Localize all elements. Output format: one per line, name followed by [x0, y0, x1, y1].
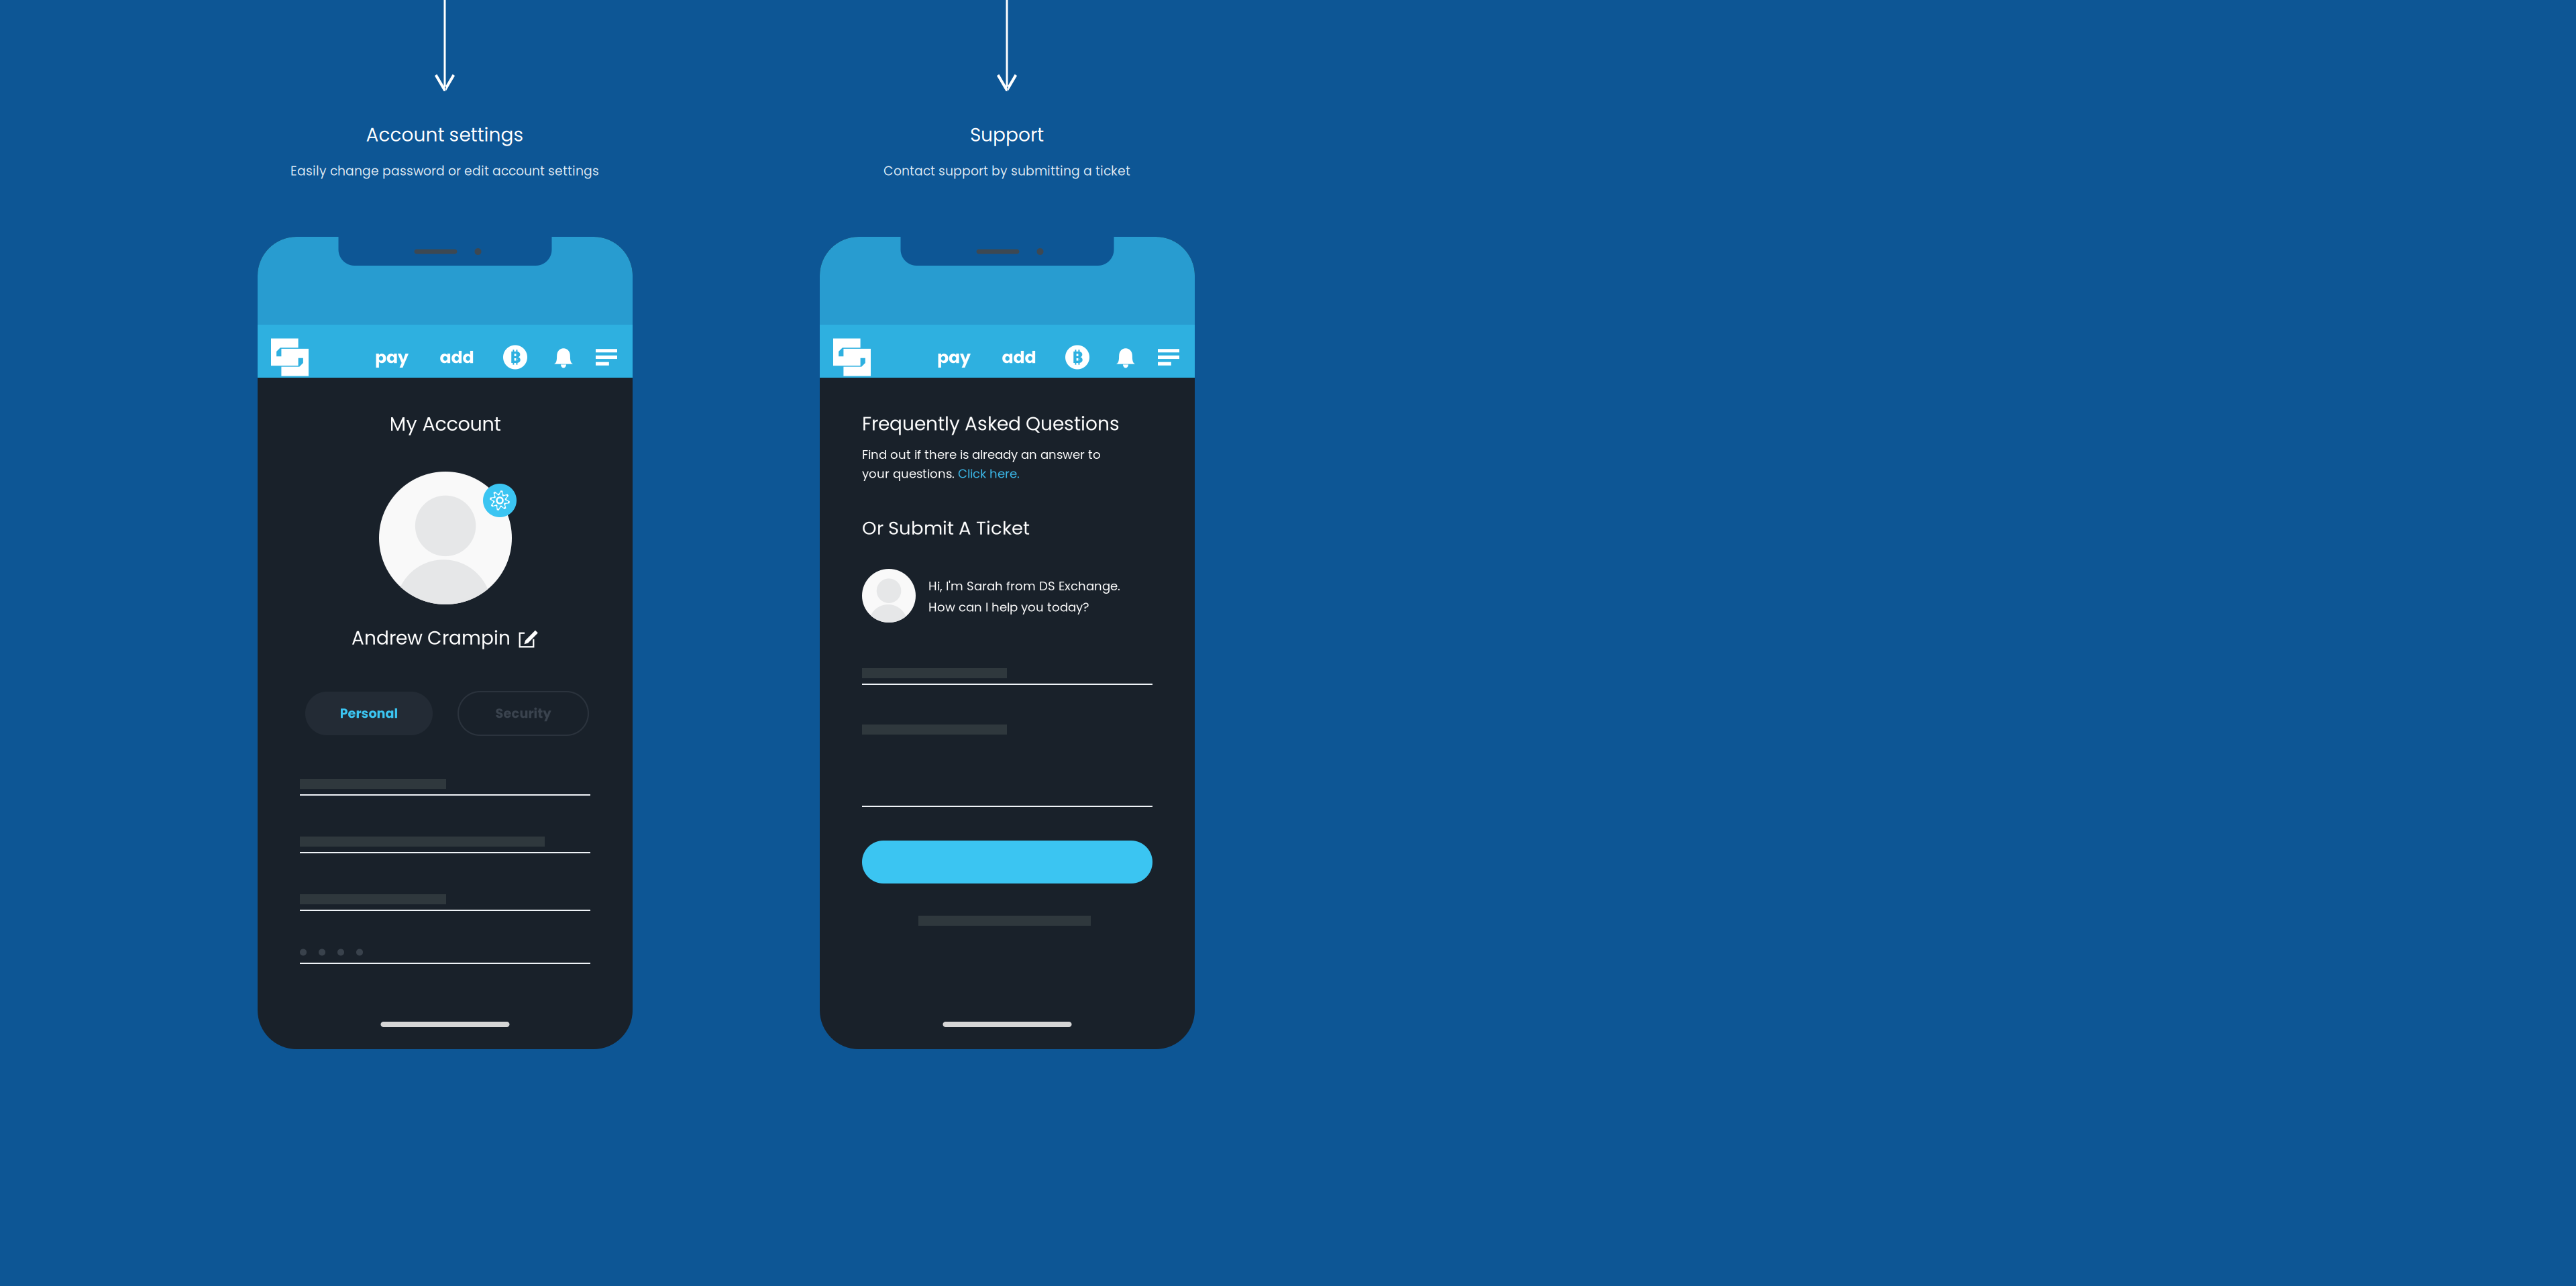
button[interactable]: DS Exchange home	[264, 331, 315, 384]
button[interactable]: Security	[458, 692, 588, 735]
staticText: Support	[970, 122, 1044, 148]
staticText: B	[1072, 346, 1083, 368]
staticText: add	[440, 345, 474, 369]
staticText: Account settings	[366, 122, 524, 148]
button[interactable]: Bitcoin wallet	[1057, 331, 1097, 384]
staticText: pay	[375, 345, 409, 369]
staticText: Andrew Crampin	[352, 625, 511, 651]
staticText: pay	[937, 345, 971, 369]
staticText: Contact support by submitting a ticket	[883, 162, 1130, 180]
button[interactable]: pay	[927, 331, 981, 384]
button[interactable]: Notifications	[543, 331, 584, 384]
button[interactable]: Menu	[586, 331, 627, 384]
button[interactable]: Andrew Crampin	[258, 623, 633, 653]
button[interactable]: Personal	[305, 692, 433, 735]
button[interactable]: pay	[365, 331, 419, 384]
button[interactable]: Click here.	[958, 465, 1020, 482]
staticText: Easily change password or edit account s…	[290, 162, 599, 180]
button[interactable]: Submit ticket	[862, 841, 1152, 883]
staticText: B	[510, 346, 521, 368]
button[interactable]: Menu	[1148, 331, 1189, 384]
staticText: Or Submit A Ticket	[862, 515, 1030, 541]
button[interactable]: DS Exchange home	[826, 331, 877, 384]
staticText: Find out if there is already an answer t…	[862, 446, 1101, 463]
staticText: Hi, I'm Sarah from DS Exchange.	[928, 578, 1120, 595]
staticText: add	[1002, 345, 1036, 369]
button[interactable]: Bitcoin wallet	[495, 331, 535, 384]
staticText: Frequently Asked Questions	[862, 411, 1120, 437]
button[interactable]: add	[430, 331, 484, 384]
staticText: Security	[495, 704, 551, 722]
staticText: Personal	[340, 704, 398, 722]
button[interactable]: Account settings	[483, 484, 517, 517]
button[interactable]: add	[992, 331, 1046, 384]
staticText: your questions.	[862, 465, 958, 482]
staticText: Click here.	[958, 465, 1020, 482]
staticText: My Account	[389, 410, 501, 437]
staticText: How can I help you today?	[928, 599, 1089, 616]
button[interactable]: Notifications	[1106, 331, 1146, 384]
